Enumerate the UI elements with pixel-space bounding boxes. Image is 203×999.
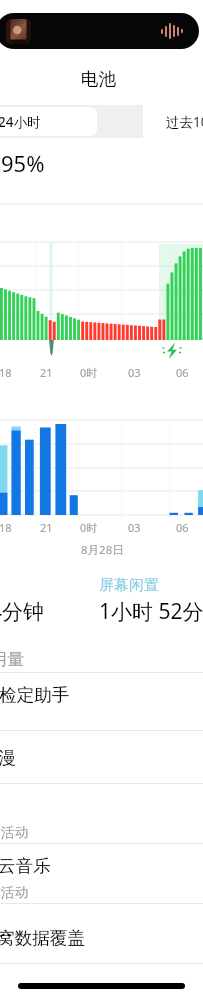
button[interactable]: 过去10天 <box>97 107 203 136</box>
staticText: 后台活动 <box>0 884 28 901</box>
button[interactable]: 云音乐 <box>0 843 203 901</box>
staticText: 95% <box>1 148 45 178</box>
button[interactable]: 后台活动 <box>0 783 203 841</box>
staticText: 3小时14分钟 <box>0 597 45 626</box>
button[interactable]: 窝数据覆盖 <box>0 915 203 959</box>
staticText: 24小时 <box>0 113 41 131</box>
button[interactable]: Now playing <box>0 13 199 49</box>
button[interactable]: 检定助手 <box>0 672 203 716</box>
staticText: 18 <box>0 520 12 535</box>
staticText: 06 <box>176 365 189 380</box>
staticText: 0时 <box>80 520 98 535</box>
staticText: 21 <box>40 365 53 380</box>
staticText: 0时 <box>80 365 98 380</box>
button[interactable]: 24小时 <box>0 107 97 136</box>
staticText: 屏幕闲置 <box>99 576 159 595</box>
staticText: 06 <box>176 520 189 535</box>
button[interactable]: 漫 <box>0 735 203 779</box>
staticText: 漫 <box>0 747 16 769</box>
staticText: 过去10天 <box>166 113 203 131</box>
staticText: 后台活动 <box>0 824 28 841</box>
staticText: 03 <box>128 365 141 380</box>
staticText: 云音乐 <box>0 855 51 877</box>
staticText: 用量 <box>0 649 24 670</box>
staticText: 18 <box>0 365 12 380</box>
staticText: 电池 <box>81 68 116 90</box>
staticText: 8月28日 <box>81 542 124 558</box>
staticText: 窝数据覆盖 <box>0 927 85 949</box>
staticText: 03 <box>128 520 141 535</box>
staticText: 检定助手 <box>0 684 70 706</box>
staticText: 1小时 52分钟 <box>99 597 203 626</box>
staticText: 21 <box>40 520 53 535</box>
